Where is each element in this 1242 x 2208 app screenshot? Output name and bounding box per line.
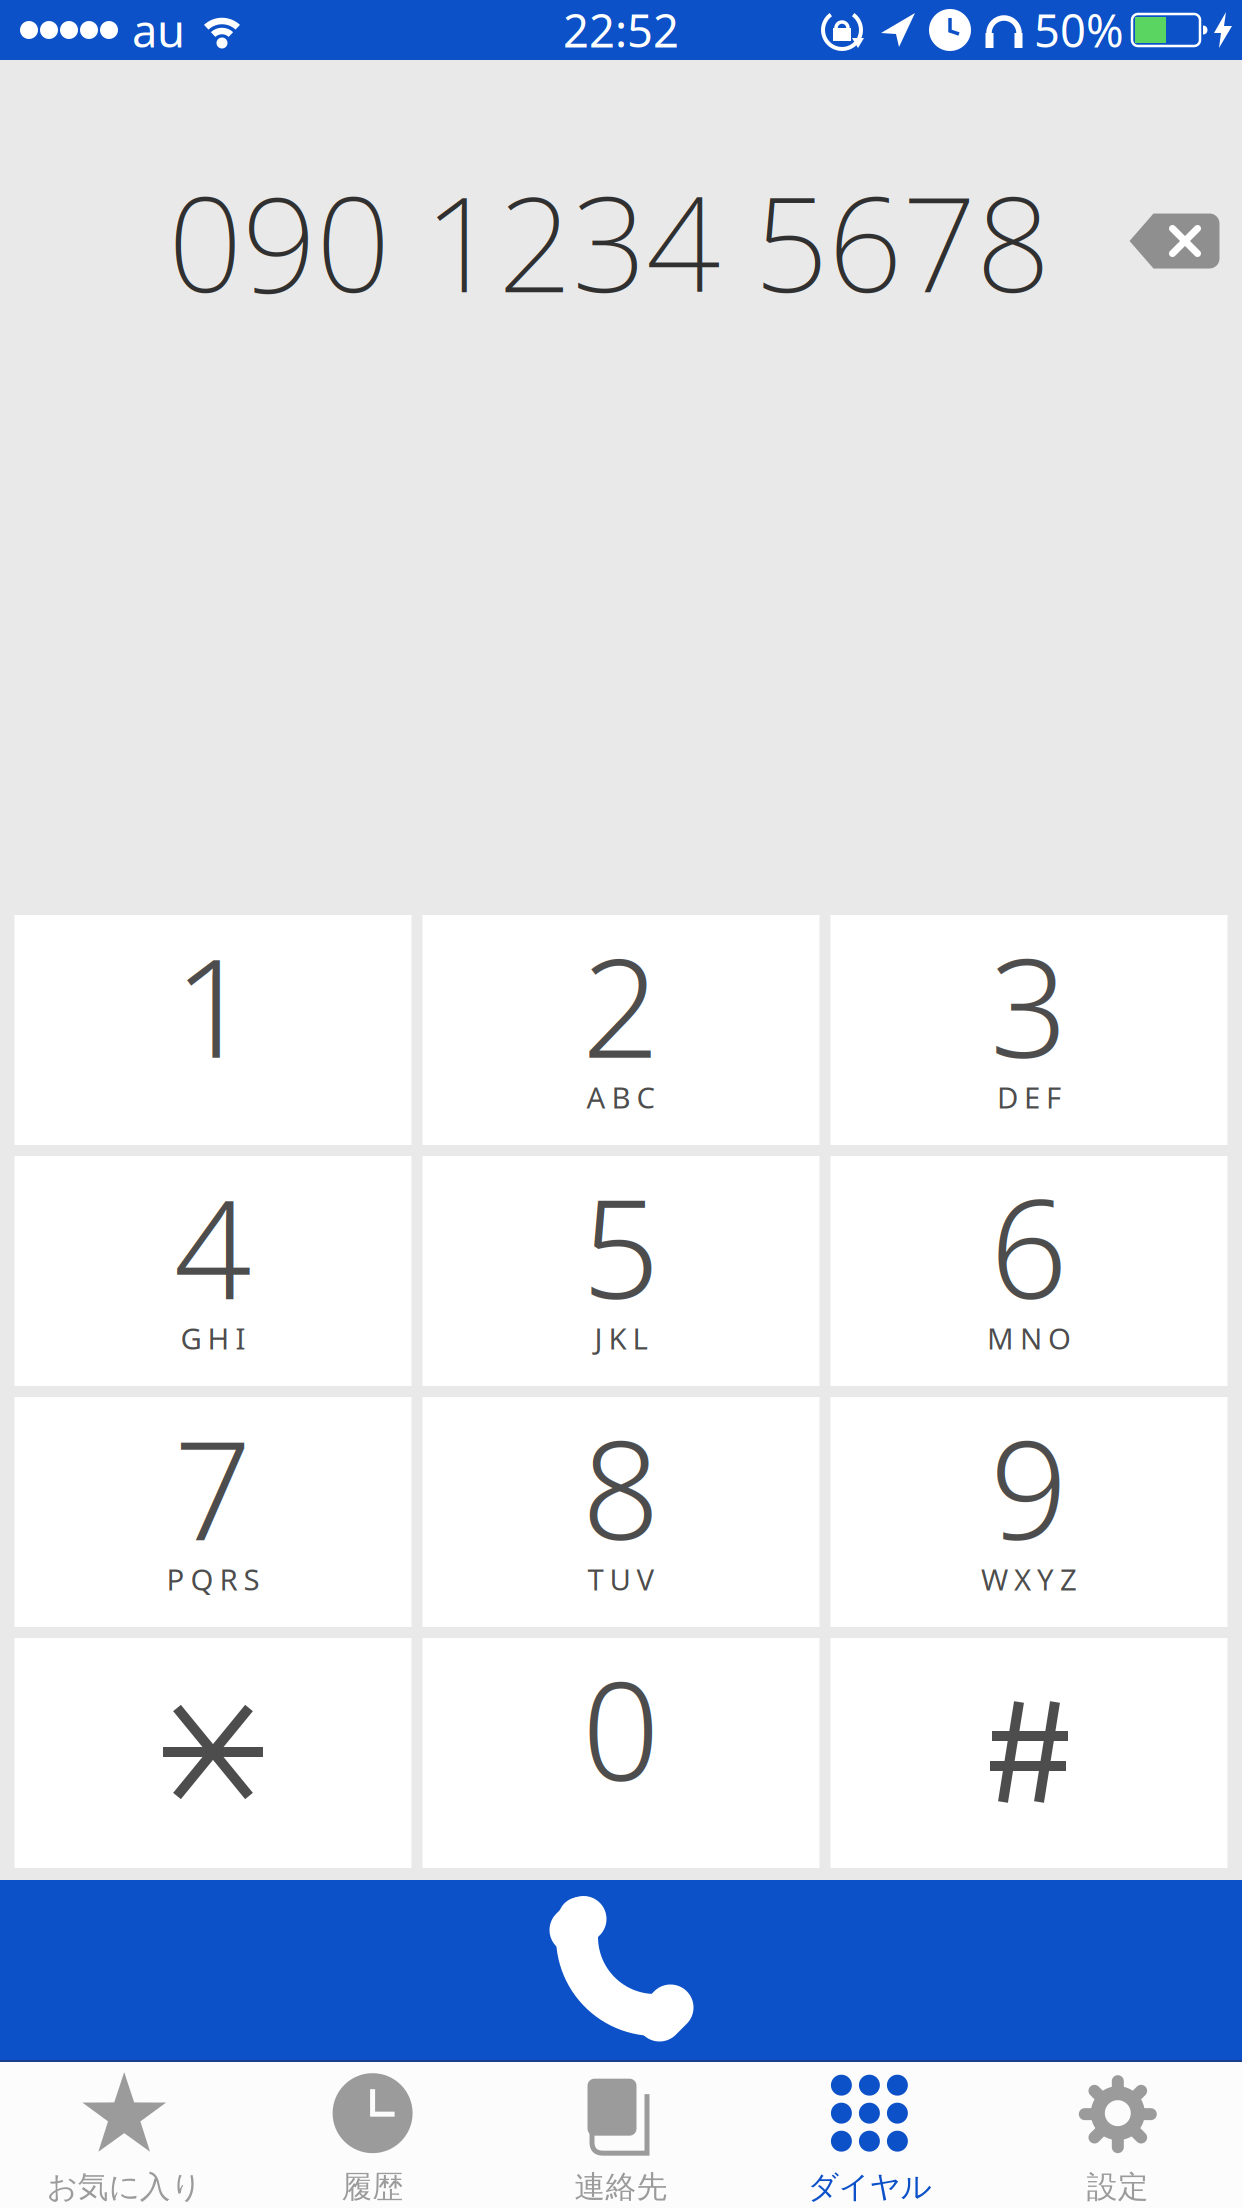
button[interactable]: Call — [0, 1880, 1242, 2060]
staticText: 5 — [582, 1156, 660, 1336]
staticText: 4 — [174, 1156, 252, 1336]
staticText: 50% — [1034, 0, 1124, 60]
staticText: PQRS — [166, 1559, 259, 1598]
button[interactable]: 8 — [422, 1397, 819, 1627]
button[interactable]: 6 — [830, 1156, 1227, 1386]
button[interactable]: 0 — [422, 1638, 819, 1868]
staticText: GHI — [180, 1318, 245, 1357]
staticText: ダイヤル — [807, 2168, 931, 2206]
staticText: WXYZ — [981, 1559, 1077, 1598]
staticText: 8 — [582, 1397, 660, 1577]
button[interactable]: お気に入り — [0, 2062, 248, 2208]
staticText: 6 — [990, 1156, 1068, 1336]
staticText: 履歴 — [342, 2168, 404, 2206]
staticText: MNO — [987, 1318, 1071, 1357]
button[interactable]: 7 — [14, 1397, 411, 1627]
staticText: 090 1234 5678 — [168, 155, 1050, 328]
staticText: 2 — [582, 915, 660, 1095]
staticText: 連絡先 — [574, 2168, 667, 2206]
button[interactable]: 連絡先 — [497, 2062, 745, 2208]
button[interactable]: 履歴 — [248, 2062, 497, 2208]
staticText: TUV — [587, 1559, 654, 1598]
staticText: お気に入り — [47, 2168, 202, 2206]
staticText: ABC — [586, 1077, 655, 1116]
button[interactable]: ダイヤル — [745, 2062, 994, 2208]
button[interactable]: 設定 — [994, 2062, 1242, 2208]
staticText: 0 — [582, 1638, 660, 1818]
staticText: 3 — [990, 915, 1068, 1095]
staticText: 22:52 — [563, 0, 679, 60]
button[interactable]: 9 — [830, 1397, 1227, 1627]
staticText: 7 — [174, 1397, 252, 1577]
button[interactable]: 4 — [14, 1156, 411, 1386]
staticText: DEF — [997, 1077, 1061, 1116]
staticText: 9 — [990, 1397, 1068, 1577]
button[interactable]: 1 — [14, 915, 411, 1145]
button[interactable]: 2 — [422, 915, 819, 1145]
button[interactable]: * — [14, 1638, 411, 1868]
button[interactable]: # — [830, 1638, 1227, 1868]
button[interactable]: 3 — [830, 915, 1227, 1145]
staticText: 1 — [174, 915, 252, 1095]
button[interactable]: 5 — [422, 1156, 819, 1386]
staticText: JKL — [594, 1318, 647, 1357]
staticText: 設定 — [1087, 2168, 1149, 2206]
staticText: au — [132, 0, 185, 60]
button[interactable]: Delete — [1128, 212, 1220, 272]
